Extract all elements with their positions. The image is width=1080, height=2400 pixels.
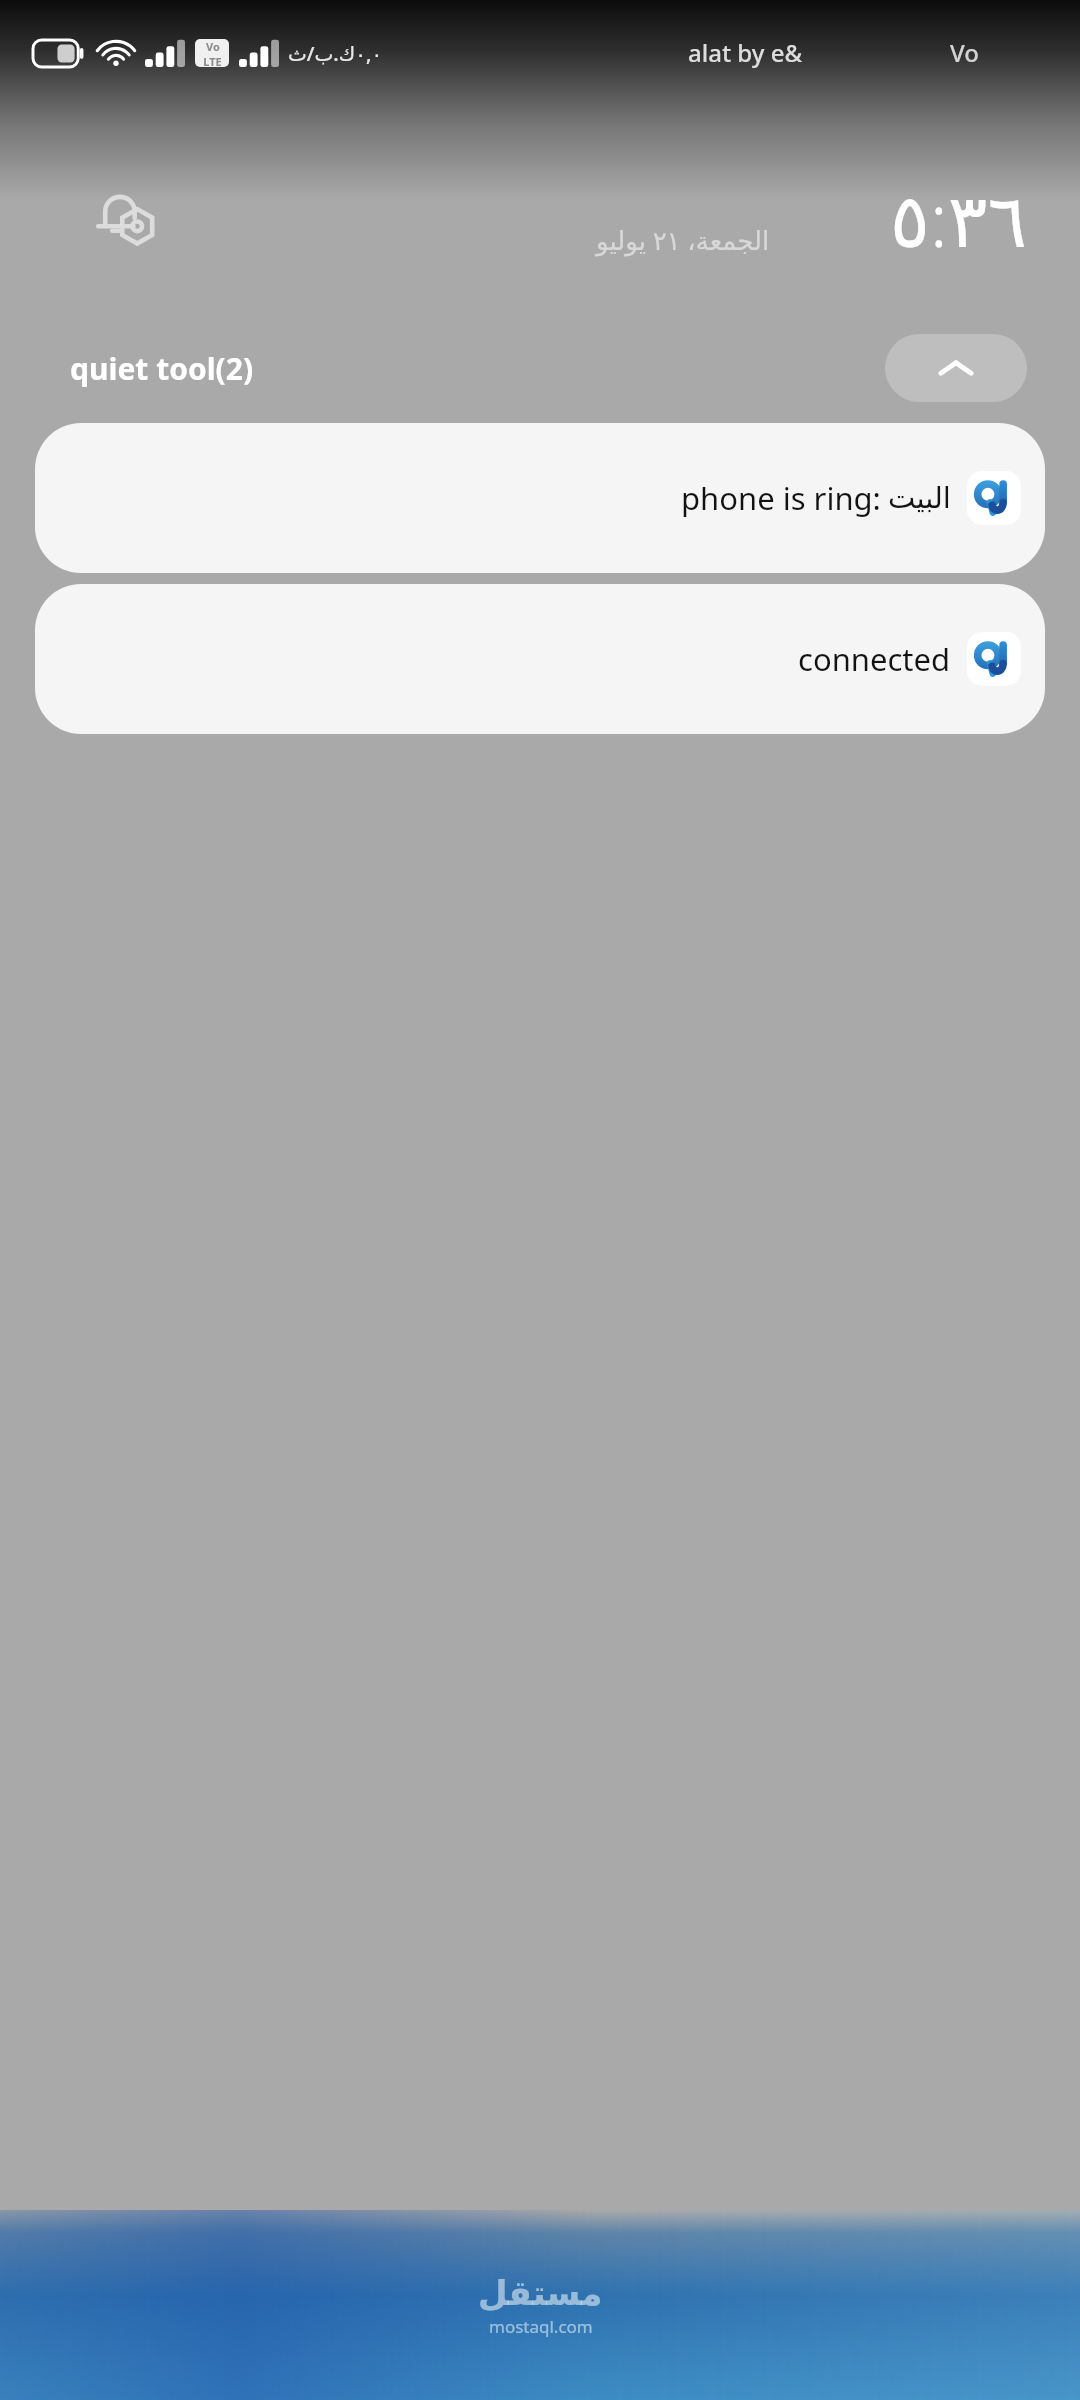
button[interactable]: Notification settings [88, 179, 166, 257]
staticText: phone is ring: [681, 477, 881, 519]
staticText: Vo [206, 39, 220, 54]
button[interactable]: connected [35, 584, 1045, 734]
button[interactable]: phone is ring: [35, 423, 1045, 573]
staticText: mostaql.com [489, 2315, 593, 2338]
staticText: alat by e& [688, 36, 803, 69]
button[interactable]: quiet tool(2) [70, 348, 254, 389]
staticText: connected [798, 638, 951, 680]
staticText: البيت [888, 481, 951, 515]
staticText: ٠,٠ك.ب/ث [288, 40, 383, 67]
staticText: مستقل [478, 2273, 603, 2313]
staticText: Vo [950, 36, 979, 69]
button[interactable]: Collapse notifications [885, 334, 1027, 402]
staticText: الجمعة، ٢١ يوليو [596, 222, 770, 257]
staticText: ٥:٣٦ [890, 168, 1028, 269]
staticText: LTE [203, 54, 222, 67]
